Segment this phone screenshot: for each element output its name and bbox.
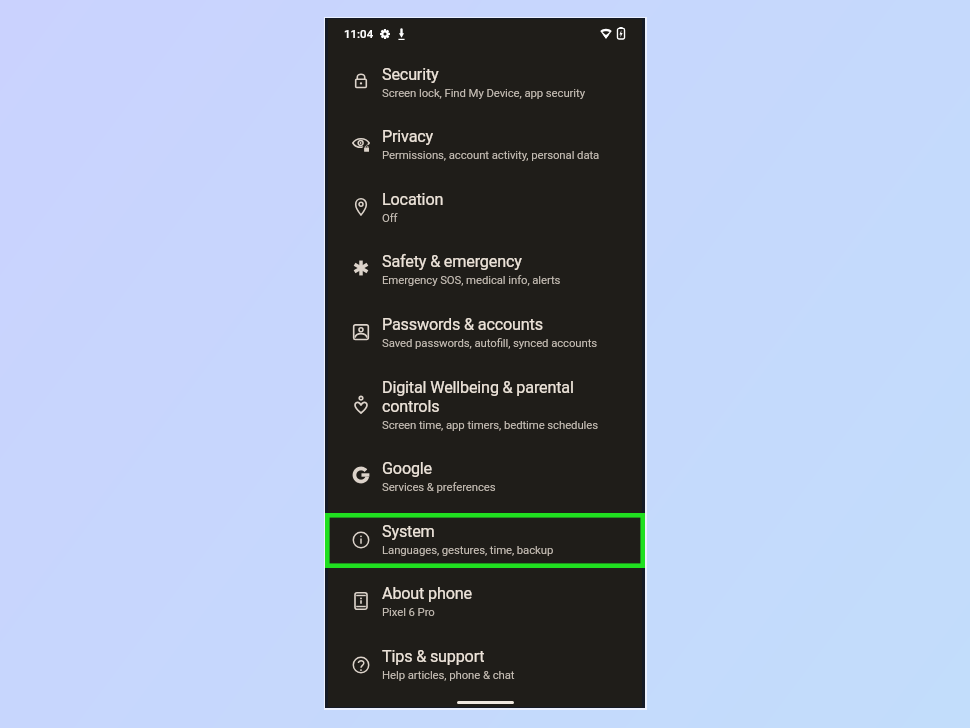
button[interactable]: About phone [328, 574, 642, 631]
button[interactable]: Safety & emergency [328, 242, 642, 299]
staticText: Permissions, account activity, personal … [382, 148, 600, 161]
staticText: 11:04 [344, 27, 374, 40]
button[interactable]: Privacy [328, 117, 642, 174]
other: Wi-Fi [600, 28, 612, 39]
staticText: Pixel 6 Pro [382, 605, 435, 618]
other: Downloading [398, 28, 405, 40]
staticText: Privacy [382, 127, 434, 146]
staticText: Emergency SOS, medical info, alerts [382, 273, 561, 286]
staticText: Languages, gestures, time, backup [382, 543, 554, 556]
button[interactable]: System [328, 512, 642, 569]
staticText: Help articles, phone & chat [382, 668, 515, 681]
staticText: Screen lock, Find My Device, app securit… [382, 86, 585, 99]
staticText: Screen time, app timers, bedtime schedul… [382, 418, 598, 431]
other: Battery charging [617, 27, 625, 39]
staticText: About phone [382, 584, 472, 603]
staticText: Services & preferences [382, 480, 496, 493]
other: Settings [380, 29, 390, 39]
button[interactable]: Security [328, 55, 642, 112]
staticText: Security [382, 65, 439, 84]
staticText: Digital Wellbeing & parental controls [382, 378, 607, 416]
button[interactable]: Google [328, 449, 642, 506]
staticText: Google [382, 459, 433, 478]
staticText: Safety & emergency [382, 252, 522, 271]
staticText: Passwords & accounts [382, 315, 543, 334]
button[interactable]: Digital Wellbeing & parental controls [328, 368, 642, 446]
staticText: Saved passwords, autofill, synced accoun… [382, 336, 598, 349]
staticText: System [382, 522, 435, 541]
button[interactable]: Location [328, 180, 642, 237]
button[interactable]: Passwords & accounts [328, 305, 642, 362]
staticText: Off [382, 211, 398, 224]
staticText: Location [382, 190, 444, 209]
staticText: Tips & support [382, 647, 485, 666]
button[interactable]: Tips & support [328, 637, 642, 694]
